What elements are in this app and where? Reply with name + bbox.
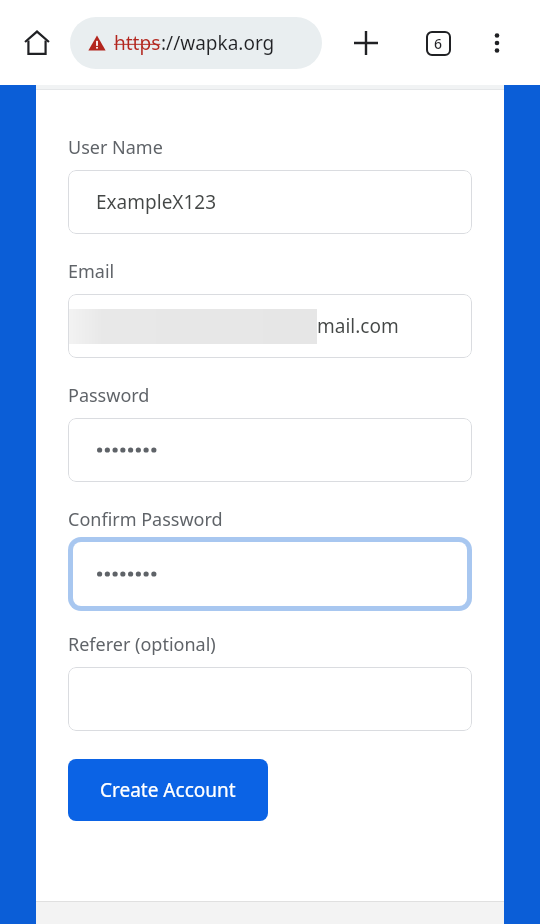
staticText: https	[114, 30, 161, 56]
button[interactable]: Create Account	[68, 759, 268, 821]
button[interactable]: Home	[14, 20, 60, 66]
button[interactable]	[68, 537, 472, 611]
staticText: Password	[68, 383, 150, 408]
button[interactable]: More options	[474, 20, 520, 66]
button[interactable]	[68, 418, 472, 482]
staticText: User Name	[68, 135, 163, 160]
staticText: Referer (optional)	[68, 632, 216, 657]
staticText: 6	[434, 34, 443, 53]
button[interactable]: mail.com	[68, 294, 472, 358]
staticText: Email	[68, 259, 115, 284]
button[interactable]: ExampleX123	[68, 170, 472, 234]
staticText: ExampleX123	[96, 189, 217, 215]
button[interactable]: Tabs, 6 open	[415, 20, 461, 66]
button[interactable]: https	[70, 17, 322, 69]
staticText: Confirm Password	[68, 507, 223, 532]
staticText: ://wapka.org	[161, 30, 275, 56]
staticText: Create Account	[100, 777, 236, 803]
button[interactable]: New tab	[343, 20, 389, 66]
staticText: mail.com	[317, 313, 399, 339]
button[interactable]	[68, 667, 472, 731]
